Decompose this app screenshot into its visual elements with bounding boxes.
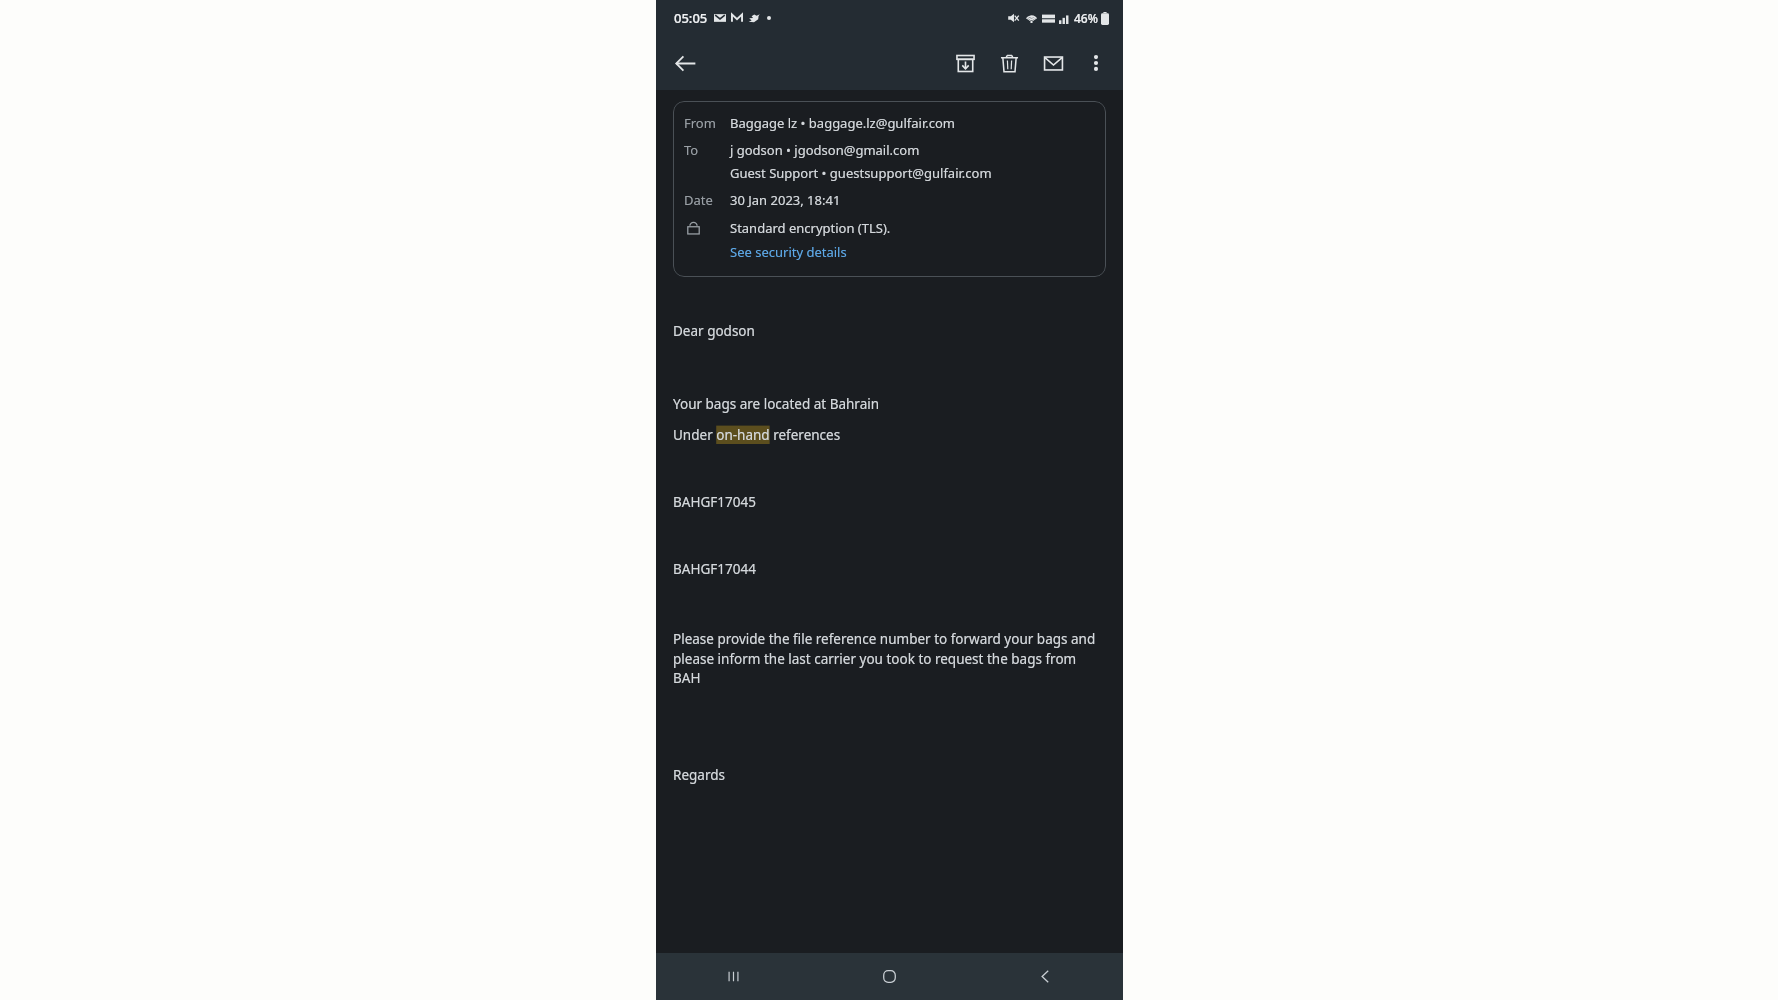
- button[interactable]: More options: [1075, 42, 1117, 84]
- staticText: Dear godson: [673, 322, 755, 340]
- staticText: 30 Jan 2023, 18:41: [730, 191, 841, 209]
- button[interactable]: Mark unread: [1031, 41, 1075, 85]
- staticText: Under on-hand references: [673, 426, 841, 444]
- staticText: Baggage lz • baggage.lz@gulfair.com: [730, 114, 955, 132]
- staticText: 05:05: [674, 9, 708, 27]
- staticText: Date: [684, 191, 713, 209]
- button[interactable]: Back: [967, 953, 1123, 1000]
- staticText: Your bags are located at Bahrain: [673, 395, 880, 413]
- staticText: BAHGF17044: [673, 560, 756, 578]
- button[interactable]: Recent apps: [656, 953, 811, 1000]
- staticText: Please provide the file reference number…: [673, 630, 1106, 687]
- staticText: j godson • jgodson@gmail.com: [730, 141, 920, 159]
- staticText: See security details: [730, 243, 847, 261]
- staticText: Regards: [673, 766, 725, 784]
- button[interactable]: Delete: [987, 41, 1031, 85]
- button[interactable]: Home: [811, 953, 967, 1000]
- staticText: Guest Support • guestsupport@gulfair.com: [730, 164, 992, 182]
- button[interactable]: Archive: [943, 41, 987, 85]
- staticText: BAHGF17045: [673, 493, 756, 511]
- staticText: From: [684, 114, 716, 132]
- staticText: Standard encryption (TLS).: [730, 219, 891, 237]
- button[interactable]: From: [673, 101, 1106, 277]
- button[interactable]: See security details: [730, 243, 847, 261]
- button[interactable]: Back: [664, 42, 706, 84]
- staticText: To: [684, 141, 699, 159]
- staticText: 46%: [1074, 10, 1098, 26]
